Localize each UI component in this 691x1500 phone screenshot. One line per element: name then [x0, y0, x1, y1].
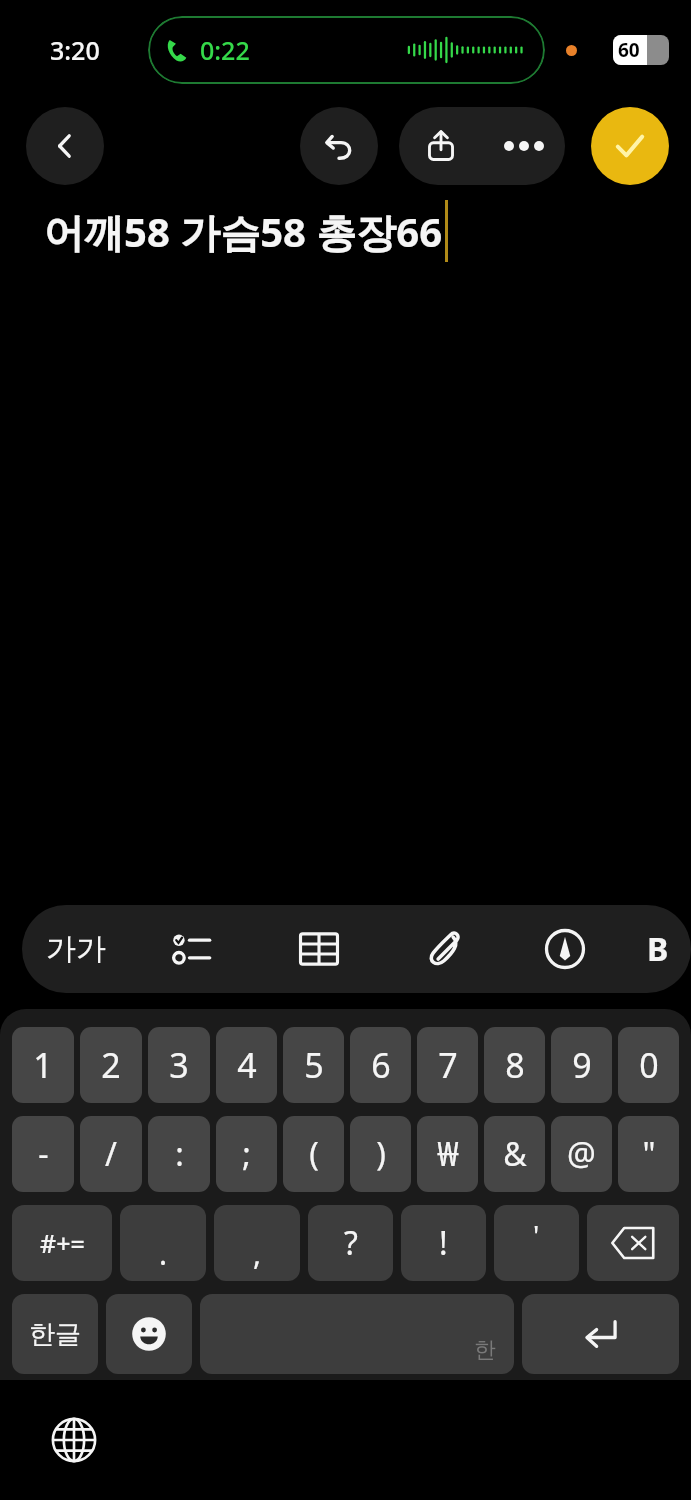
staticText: 2: [101, 1042, 121, 1088]
staticText: 9: [572, 1042, 592, 1088]
button[interactable]: :: [148, 1116, 210, 1192]
staticText: :: [175, 1132, 184, 1176]
button[interactable]: 3: [148, 1027, 210, 1103]
staticText: 3: [169, 1042, 189, 1088]
button[interactable]: Emoji: [106, 1294, 192, 1374]
button[interactable]: Ongoing call: [148, 16, 545, 84]
staticText: ': [533, 1216, 540, 1254]
staticText: 6: [371, 1042, 391, 1088]
button[interactable]: Text format: [624, 905, 691, 993]
staticText: 1: [33, 1042, 53, 1088]
staticText: ,: [253, 1233, 262, 1274]
staticText: (: [309, 1132, 319, 1176]
button[interactable]: (: [283, 1116, 344, 1192]
button[interactable]: Draw: [506, 905, 624, 993]
staticText: 가가: [46, 930, 106, 968]
button[interactable]: Table: [256, 905, 382, 993]
staticText: 5: [304, 1042, 324, 1088]
staticText: 3:20: [50, 33, 100, 67]
button[interactable]: Share: [399, 107, 482, 185]
button[interactable]: More options: [482, 107, 565, 185]
staticText: 한글: [29, 1318, 81, 1351]
button[interactable]: 0: [618, 1027, 679, 1103]
button[interactable]: /: [80, 1116, 142, 1192]
button[interactable]: Back: [26, 107, 104, 185]
button[interactable]: Checklist: [130, 905, 256, 993]
staticText: ": [642, 1132, 656, 1176]
staticText: 8: [505, 1042, 525, 1088]
button[interactable]: -: [12, 1116, 74, 1192]
button[interactable]: 5: [283, 1027, 344, 1103]
button[interactable]: Done: [591, 107, 669, 185]
staticText: ₩: [437, 1132, 459, 1176]
button[interactable]: Attach: [382, 905, 506, 993]
staticText: .: [159, 1233, 168, 1274]
button[interactable]: Enter: [522, 1294, 679, 1374]
button[interactable]: 한글: [12, 1294, 98, 1374]
button[interactable]: ': [494, 1205, 579, 1281]
staticText: &: [503, 1132, 527, 1176]
staticText: ): [376, 1132, 386, 1176]
staticText: 0: [639, 1042, 659, 1088]
button[interactable]: @: [551, 1116, 612, 1192]
button[interactable]: ;: [216, 1116, 277, 1192]
button[interactable]: Undo: [300, 107, 378, 185]
button[interactable]: 2: [80, 1027, 142, 1103]
button[interactable]: 7: [417, 1027, 478, 1103]
staticText: 어깨58 가슴58 총장66: [44, 204, 443, 259]
button[interactable]: &: [484, 1116, 545, 1192]
staticText: @: [567, 1132, 596, 1176]
button[interactable]: Space: [200, 1294, 514, 1374]
staticText: -: [38, 1132, 49, 1176]
staticText: ?: [344, 1221, 358, 1265]
button[interactable]: ,: [214, 1205, 300, 1281]
button[interactable]: Change language: [46, 1412, 102, 1468]
staticText: 7: [438, 1042, 458, 1088]
button[interactable]: 4: [216, 1027, 277, 1103]
button[interactable]: 1: [12, 1027, 74, 1103]
button[interactable]: .: [120, 1205, 206, 1281]
button[interactable]: ": [618, 1116, 679, 1192]
staticText: 4: [237, 1042, 257, 1088]
staticText: #+=: [40, 1226, 85, 1260]
staticText: 한: [474, 1336, 496, 1364]
button[interactable]: 가가 style: [22, 905, 130, 993]
button[interactable]: 9: [551, 1027, 612, 1103]
button[interactable]: ): [350, 1116, 411, 1192]
button[interactable]: #+=: [12, 1205, 112, 1281]
staticText: ;: [242, 1132, 251, 1176]
button[interactable]: 6: [350, 1027, 411, 1103]
staticText: 60: [618, 37, 640, 63]
button[interactable]: !: [401, 1205, 486, 1281]
button[interactable]: 8: [484, 1027, 545, 1103]
staticText: 0:22: [200, 33, 250, 67]
button[interactable]: ₩: [417, 1116, 478, 1192]
staticText: B: [647, 927, 669, 971]
button[interactable]: Backspace: [587, 1205, 679, 1281]
button[interactable]: ?: [308, 1205, 393, 1281]
staticText: !: [439, 1221, 448, 1265]
staticText: /: [105, 1132, 117, 1176]
